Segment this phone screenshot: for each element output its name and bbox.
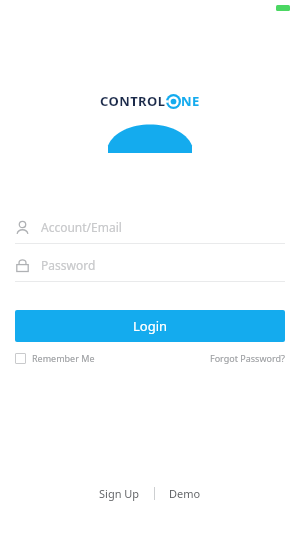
staticText: Sign Up	[99, 486, 140, 501]
staticText: Login	[133, 317, 168, 335]
staticText: Forgot Password?	[210, 352, 285, 364]
staticText: Account/Email	[41, 219, 122, 235]
staticText: Password	[41, 257, 96, 273]
button[interactable]: Password field	[0, 249, 300, 287]
staticText: Remember Me	[32, 352, 95, 364]
staticText: CONTROL	[100, 92, 166, 110]
button[interactable]: Account or Email field	[0, 211, 300, 249]
button[interactable]: Forgot Password?	[210, 352, 285, 364]
button[interactable]: Remember Me	[15, 352, 95, 364]
staticText: Demo	[169, 486, 201, 501]
staticText: NE	[181, 92, 200, 110]
button[interactable]: Sign Up	[85, 482, 154, 505]
button[interactable]: Demo	[155, 482, 215, 505]
button[interactable]: Login	[15, 310, 285, 342]
